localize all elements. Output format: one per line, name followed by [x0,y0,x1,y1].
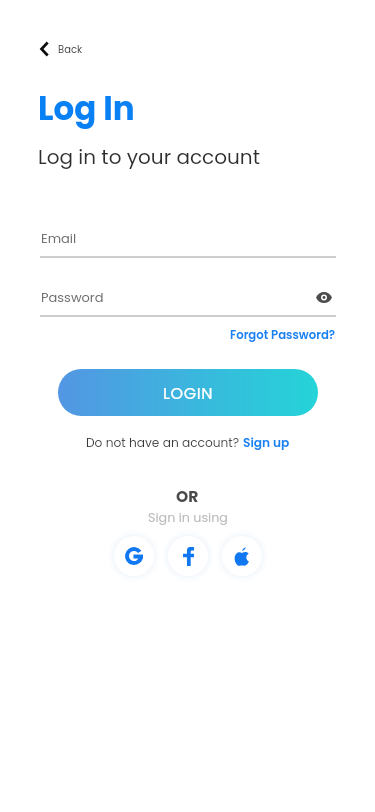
staticText: Sign in using [148,509,228,527]
staticText: Log in to your account [38,143,260,171]
button[interactable]: Sign in with Facebook [168,536,208,576]
staticText: Forgot Password? [230,327,336,343]
button[interactable]: Back [34,35,91,63]
staticText: OR [176,486,199,508]
button[interactable]: Show password [310,283,338,311]
button[interactable] [32,283,307,317]
button[interactable]: LOGIN [58,369,318,416]
button[interactable] [32,224,342,258]
button[interactable]: Sign in with Google [114,536,154,576]
staticText: LOGIN [163,382,214,404]
staticText: Back [58,42,83,56]
button[interactable]: Forgot Password? [222,322,344,348]
button[interactable]: Sign up [243,431,290,454]
staticText: Email [41,229,77,247]
staticText: Do not have an account? [86,434,243,451]
staticText: Log In [38,86,135,132]
staticText: Password [41,288,104,306]
staticText: Sign up [243,434,290,451]
button[interactable]: Sign in with Apple [222,536,262,576]
